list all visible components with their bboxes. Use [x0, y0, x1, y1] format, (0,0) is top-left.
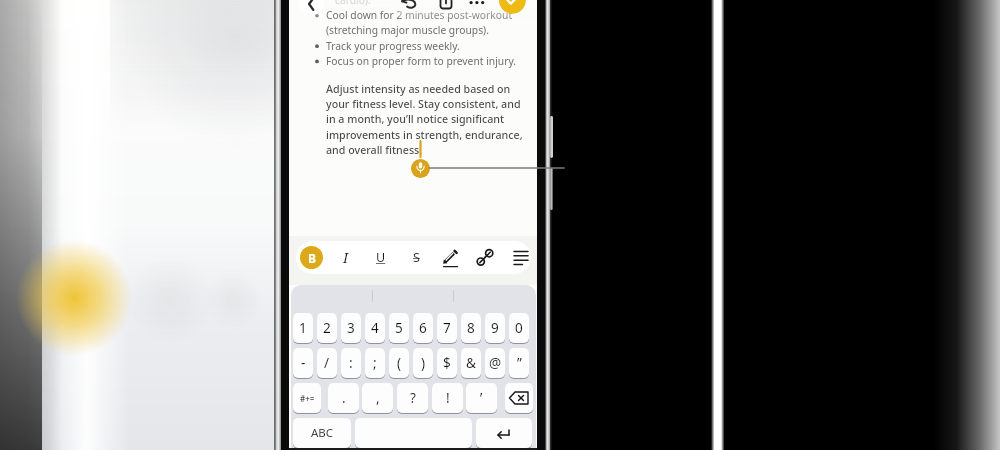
button[interactable]: ABC — [293, 418, 351, 448]
button[interactable]: ? — [397, 383, 428, 413]
button[interactable]: ” — [509, 348, 529, 378]
staticText: ) — [421, 354, 426, 372]
staticText: - — [301, 354, 306, 372]
staticText: ABC — [311, 425, 334, 441]
staticText: 6 — [419, 319, 427, 337]
staticText: #+= — [300, 393, 315, 404]
button[interactable]: , — [362, 383, 393, 413]
staticText: ; — [373, 354, 377, 372]
button[interactable]: ; — [365, 348, 385, 378]
staticText: ? — [410, 389, 416, 407]
staticText: 1 — [299, 319, 307, 337]
button[interactable] — [411, 159, 430, 178]
button[interactable]: 9 — [485, 313, 505, 343]
staticText: cardio). — [335, 0, 371, 7]
button[interactable]: 7 — [437, 313, 457, 343]
button[interactable]: U — [373, 246, 389, 269]
button[interactable]: 1 — [293, 313, 313, 343]
staticText: : — [349, 354, 353, 372]
button[interactable]: B — [300, 246, 323, 269]
staticText: improvements in strength, endurance, — [326, 128, 523, 143]
button[interactable] — [465, 0, 489, 10]
staticText: 2 — [323, 319, 331, 337]
staticText: / — [324, 354, 330, 372]
button[interactable]: ) — [413, 348, 433, 378]
button[interactable]: & — [461, 348, 481, 378]
button[interactable]: 0 — [509, 313, 529, 343]
button[interactable]: 8 — [461, 313, 481, 343]
staticText: 0 — [515, 319, 523, 337]
staticText: ( — [397, 354, 402, 372]
button[interactable]: / — [317, 348, 337, 378]
button[interactable]: 2 — [317, 313, 337, 343]
button[interactable] — [476, 418, 532, 448]
staticText: , — [376, 389, 380, 407]
button[interactable] — [439, 0, 455, 10]
staticText: Track your progress weekly. — [326, 39, 460, 53]
button[interactable] — [298, 0, 324, 13]
staticText: 8 — [467, 319, 475, 337]
staticText: 4 — [371, 319, 379, 337]
staticText: ’ — [480, 389, 483, 407]
button[interactable]: 5 — [389, 313, 409, 343]
button[interactable]: #+= — [293, 383, 321, 413]
staticText: in a month, you’ll notice significant — [326, 112, 505, 127]
button[interactable]: : — [341, 348, 361, 378]
staticText: I — [343, 248, 349, 267]
staticText: (stretching major muscle groups). — [326, 23, 489, 37]
button[interactable]: - — [293, 348, 313, 378]
staticText: B — [308, 250, 316, 266]
button[interactable] — [476, 246, 496, 269]
button[interactable]: 4 — [365, 313, 385, 343]
staticText: S — [413, 249, 420, 266]
button[interactable]: I — [338, 246, 354, 269]
staticText: & — [466, 354, 476, 372]
button[interactable] — [355, 418, 472, 448]
button[interactable]: $ — [437, 348, 457, 378]
staticText: U — [376, 249, 386, 266]
button[interactable] — [511, 246, 531, 269]
button[interactable] — [441, 246, 461, 269]
staticText: Cool down for 2 minutes post-workout — [326, 8, 513, 22]
button[interactable]: . — [328, 383, 359, 413]
staticText: 5 — [395, 319, 403, 337]
staticText: . — [342, 389, 346, 407]
button[interactable]: 3 — [341, 313, 361, 343]
staticText: @ — [489, 354, 502, 372]
button[interactable] — [505, 383, 533, 413]
staticText: ” — [517, 354, 522, 372]
staticText: 9 — [491, 319, 499, 337]
staticText: $ — [443, 354, 451, 372]
button[interactable]: S — [408, 246, 424, 269]
staticText: and overall fitness. — [326, 143, 423, 158]
staticText: Focus on proper form to prevent injury. — [326, 54, 517, 68]
button[interactable]: @ — [485, 348, 505, 378]
button[interactable]: ! — [432, 383, 463, 413]
staticText: ! — [446, 389, 450, 407]
staticText: Adjust intensity as needed based on — [326, 82, 511, 97]
button[interactable]: ’ — [466, 383, 497, 413]
staticText: 3 — [347, 319, 355, 337]
button[interactable]: ( — [389, 348, 409, 378]
staticText: 7 — [443, 319, 451, 337]
button[interactable]: 6 — [413, 313, 433, 343]
button[interactable] — [401, 0, 419, 10]
staticText: your fitness level. Stay consistent, and — [326, 97, 521, 112]
